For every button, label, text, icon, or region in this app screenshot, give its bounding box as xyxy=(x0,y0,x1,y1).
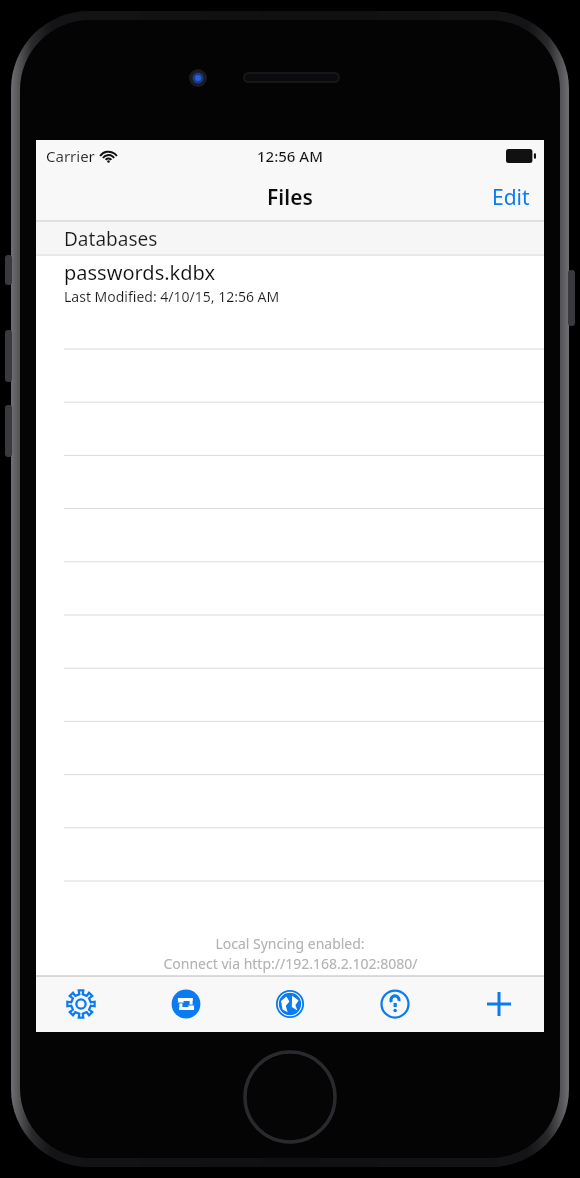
button[interactable]: Help xyxy=(372,981,418,1027)
staticText: Carrier xyxy=(46,146,95,166)
staticText: Databases xyxy=(64,226,158,252)
button[interactable]: Edit xyxy=(478,173,544,222)
staticText: Connect via http://192.168.2.102:8080/ xyxy=(163,954,418,973)
staticText: 12:56 AM xyxy=(257,146,323,166)
staticText: passwords.kdbx xyxy=(64,259,216,286)
staticText: Files xyxy=(267,183,313,212)
button[interactable]: Sync xyxy=(163,981,209,1027)
staticText: Edit xyxy=(492,183,530,212)
button[interactable]: Settings xyxy=(58,981,104,1027)
button[interactable]: Add database xyxy=(476,981,522,1027)
staticText: Local Syncing enabled: xyxy=(215,934,365,953)
button[interactable]: passwords.kdbx xyxy=(36,256,544,309)
button[interactable]: Web server xyxy=(267,981,313,1027)
staticText: Last Modified: 4/10/15, 12:56 AM xyxy=(64,287,280,306)
